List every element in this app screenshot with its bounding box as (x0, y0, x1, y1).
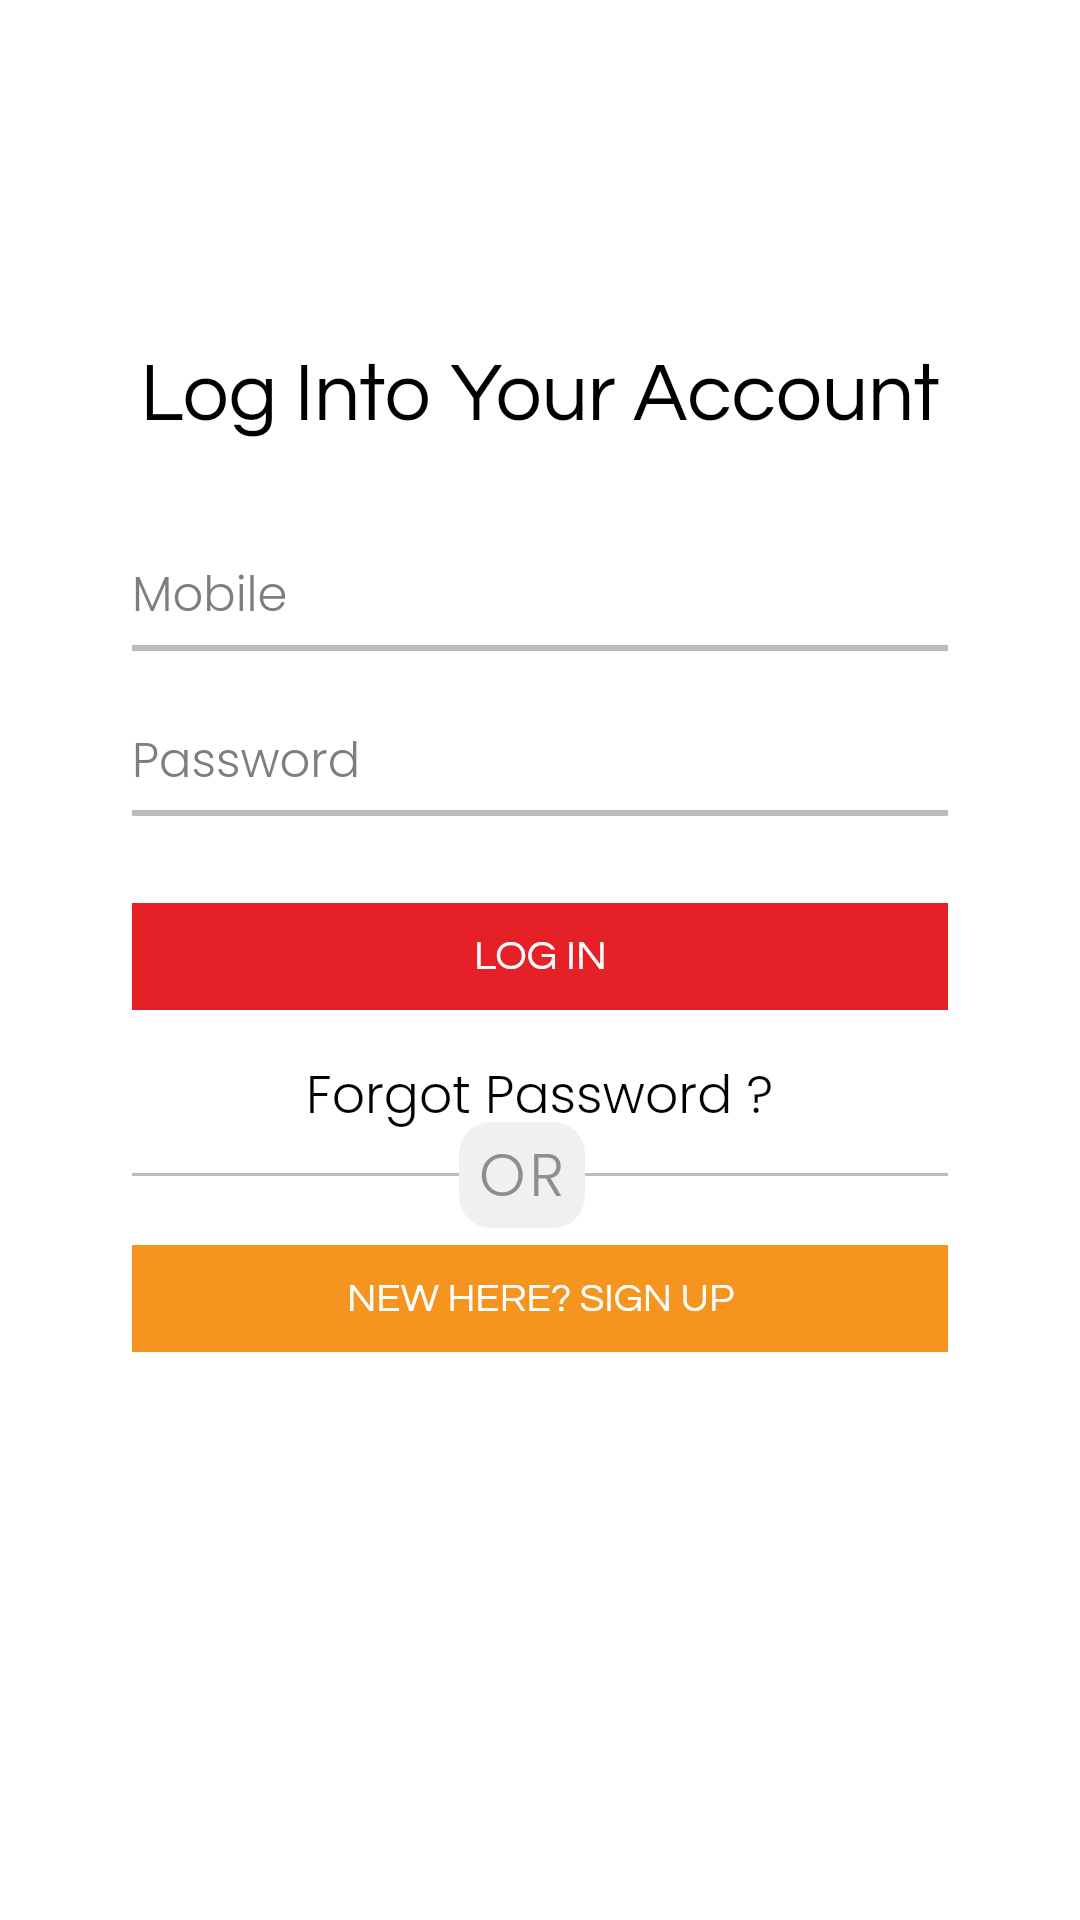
staticText: Log Into Your Account (140, 353, 940, 437)
staticText: Forgot Password ? (306, 1058, 774, 1131)
button[interactable]: Password (132, 727, 948, 816)
button[interactable]: Forgot Password ? (132, 1055, 948, 1133)
staticText: Password (132, 727, 361, 794)
button[interactable]: Mobile (132, 561, 948, 651)
button[interactable]: NEW HERE? SIGN UP (132, 1245, 948, 1352)
staticText: LOG IN (474, 935, 607, 978)
staticText: Mobile (132, 561, 288, 628)
staticText: NEW HERE? SIGN UP (347, 1278, 734, 1319)
staticText: OR (479, 1134, 569, 1217)
button[interactable]: LOG IN (132, 903, 948, 1010)
